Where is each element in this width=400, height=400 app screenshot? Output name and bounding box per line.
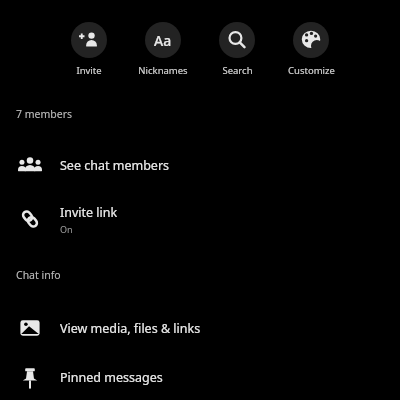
button[interactable]: Nicknames bbox=[132, 22, 194, 77]
staticText: View media, files & links bbox=[60, 320, 201, 337]
staticText: Search bbox=[222, 64, 253, 77]
staticText: Aa bbox=[154, 31, 172, 50]
staticText: Invite link bbox=[60, 204, 118, 221]
button[interactable]: Invite bbox=[58, 22, 120, 77]
staticText: On bbox=[60, 223, 73, 235]
button[interactable]: Invite link bbox=[0, 192, 400, 246]
button[interactable]: Pinned messages bbox=[0, 355, 400, 400]
staticText: Nicknames bbox=[138, 64, 188, 77]
button[interactable]: See chat members bbox=[0, 138, 400, 192]
staticText: Invite bbox=[76, 64, 102, 77]
button[interactable]: Search bbox=[206, 22, 268, 77]
button[interactable]: View media, files & links bbox=[0, 301, 400, 355]
staticText: 7 members bbox=[16, 107, 73, 121]
button[interactable]: Customize bbox=[280, 22, 342, 77]
staticText: Pinned messages bbox=[60, 369, 163, 386]
staticText: See chat members bbox=[60, 157, 170, 174]
staticText: Chat info bbox=[16, 268, 61, 282]
staticText: Customize bbox=[288, 64, 335, 77]
